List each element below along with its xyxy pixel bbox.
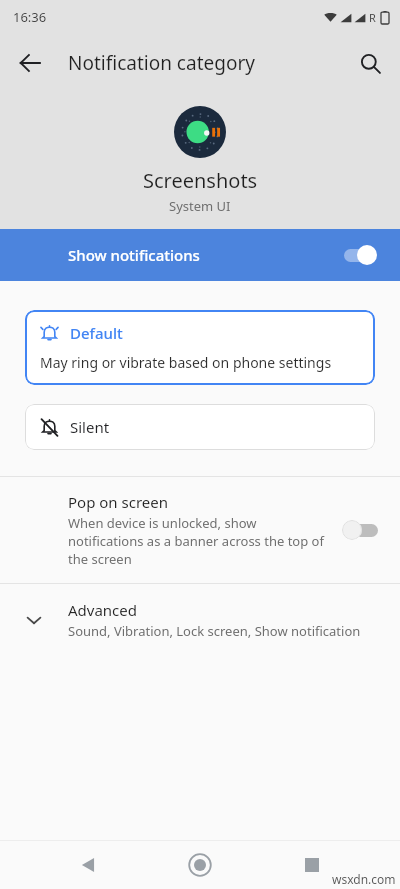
staticText: Pop on screen (68, 492, 168, 512)
button[interactable]: Recent apps (288, 841, 336, 889)
button[interactable]: Show notifications (0, 229, 400, 281)
staticText: Advanced (68, 600, 138, 620)
button[interactable]: Home (176, 841, 224, 889)
staticText: Show notifications (68, 245, 340, 265)
staticText: Sound, Vibration, Lock screen, Show noti… (68, 622, 382, 640)
staticText: System UI (169, 197, 231, 215)
staticText: When device is unlocked, show notificati… (68, 514, 332, 568)
button[interactable]: Advanced (0, 584, 400, 656)
button[interactable]: Back (64, 841, 112, 889)
staticText: May ring or vibrate based on phone setti… (40, 353, 332, 372)
staticText: Default (70, 323, 123, 343)
staticText: R (369, 10, 376, 25)
staticText: Notification category (68, 50, 255, 76)
button[interactable]: Back (8, 41, 52, 85)
staticText: 16:36 (13, 8, 47, 26)
button[interactable]: Pop on screen (0, 477, 400, 583)
staticText: wsxdn.com (332, 871, 396, 887)
button[interactable]: Search (348, 41, 392, 85)
button[interactable]: Silent (25, 404, 375, 450)
button[interactable]: Default (25, 310, 375, 385)
staticText: Screenshots (143, 167, 258, 194)
staticText: Silent (70, 417, 110, 437)
